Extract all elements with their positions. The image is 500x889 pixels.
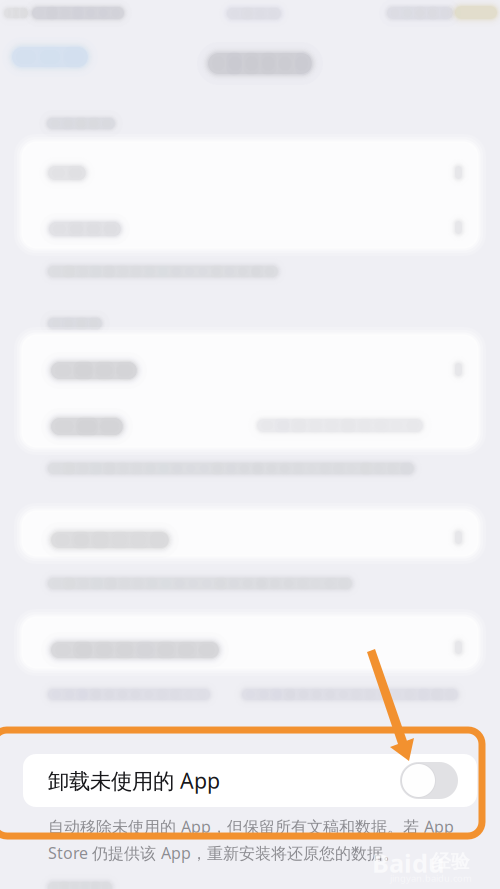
- button[interactable]: 卸载未使用的 App: [23, 754, 477, 807]
- staticText: Store 仍提供该 App，重新安装将还原您的数据。: [48, 842, 399, 863]
- staticText: 卸载未使用的 App: [48, 766, 220, 795]
- staticText: Baidu: [372, 846, 444, 880]
- staticText: 自动移除未使用的 App，但保留所有文稿和数据。若 App: [48, 816, 454, 837]
- staticText: 经验: [432, 850, 470, 873]
